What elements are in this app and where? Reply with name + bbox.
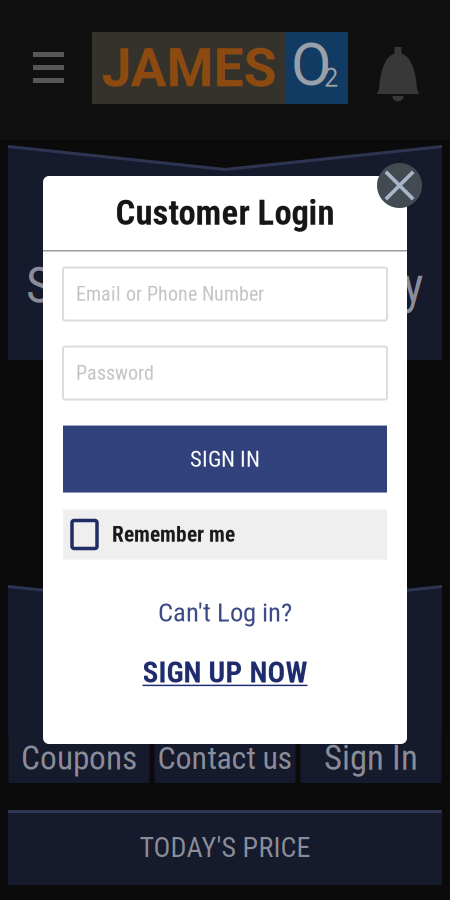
button[interactable]: Sign In xyxy=(300,733,441,783)
staticText: O xyxy=(291,31,331,99)
button[interactable]: Password xyxy=(63,346,387,399)
button[interactable]: Contact us xyxy=(154,733,295,783)
staticText: Email or Phone Number xyxy=(76,282,264,306)
staticText: 2 xyxy=(324,63,338,93)
staticText: Search Your Delivery xyxy=(26,257,424,315)
button[interactable]: SIGN IN xyxy=(63,425,387,492)
staticText: TODAY'S PRICE xyxy=(139,831,310,864)
button[interactable]: TODAY'S PRICE xyxy=(8,810,442,885)
staticText: Customer Login xyxy=(115,193,334,233)
button[interactable]: Notifications xyxy=(371,41,425,105)
staticText: SIGN IN xyxy=(190,446,260,472)
button[interactable]: Close xyxy=(377,163,422,208)
staticText: JAMES xyxy=(101,37,276,99)
staticText: Can't Log in? xyxy=(158,597,292,628)
staticText: Contact us xyxy=(157,739,292,777)
staticText: SIGN UP NOW xyxy=(142,655,307,690)
button[interactable]: SIGN UP NOW xyxy=(63,656,387,688)
button[interactable]: Menu xyxy=(25,40,72,95)
button[interactable]: Can't Log in? xyxy=(63,597,387,627)
staticText: Sign In xyxy=(324,738,418,778)
button[interactable]: Coupons xyxy=(8,733,149,783)
staticText: Remember me xyxy=(112,522,235,547)
button[interactable]: Email or Phone Number xyxy=(63,267,387,320)
button[interactable]: Remember me xyxy=(63,509,387,559)
staticText: Coupons xyxy=(21,738,137,778)
staticText: Password xyxy=(76,361,154,385)
